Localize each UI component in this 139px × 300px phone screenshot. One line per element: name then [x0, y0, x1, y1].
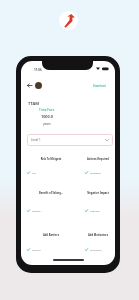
button[interactable]: mitigated [80, 169, 115, 175]
staticText: Add Motivators [80, 233, 115, 237]
button[interactable]: Level 1 [27, 134, 113, 146]
button[interactable]: risk [22, 169, 80, 175]
staticText: risk [32, 171, 37, 174]
staticText: Negative Impact [80, 191, 115, 195]
staticText: Time Face [39, 108, 55, 112]
button[interactable]: Download [92, 83, 107, 89]
button[interactable]: motivator1 [80, 246, 115, 252]
staticText: Download [93, 84, 106, 88]
button[interactable]: Back [25, 81, 34, 90]
staticText: years [43, 122, 51, 126]
staticText: barrier1 [32, 248, 42, 251]
button[interactable]: benefit 1 [22, 207, 80, 213]
button[interactable]: negative [80, 207, 115, 213]
staticText: 1000.0 [41, 114, 53, 119]
button[interactable]: Profile [35, 82, 42, 89]
staticText: benefit 1 [32, 209, 42, 212]
button[interactable]: barrier1 [22, 246, 80, 252]
staticText: Benefit of Taking... [22, 191, 80, 195]
staticText: negative [90, 209, 100, 212]
staticText: 11:06 [34, 68, 42, 72]
staticText: TTAM [28, 101, 39, 106]
staticText: Level 1 [31, 138, 41, 142]
staticText: Actions Required [80, 157, 115, 161]
staticText: mitigated [90, 171, 101, 174]
staticText: Risk To Mitigate [22, 157, 80, 161]
staticText: motivator1 [90, 248, 103, 251]
staticText: Add Barriers [22, 233, 80, 237]
